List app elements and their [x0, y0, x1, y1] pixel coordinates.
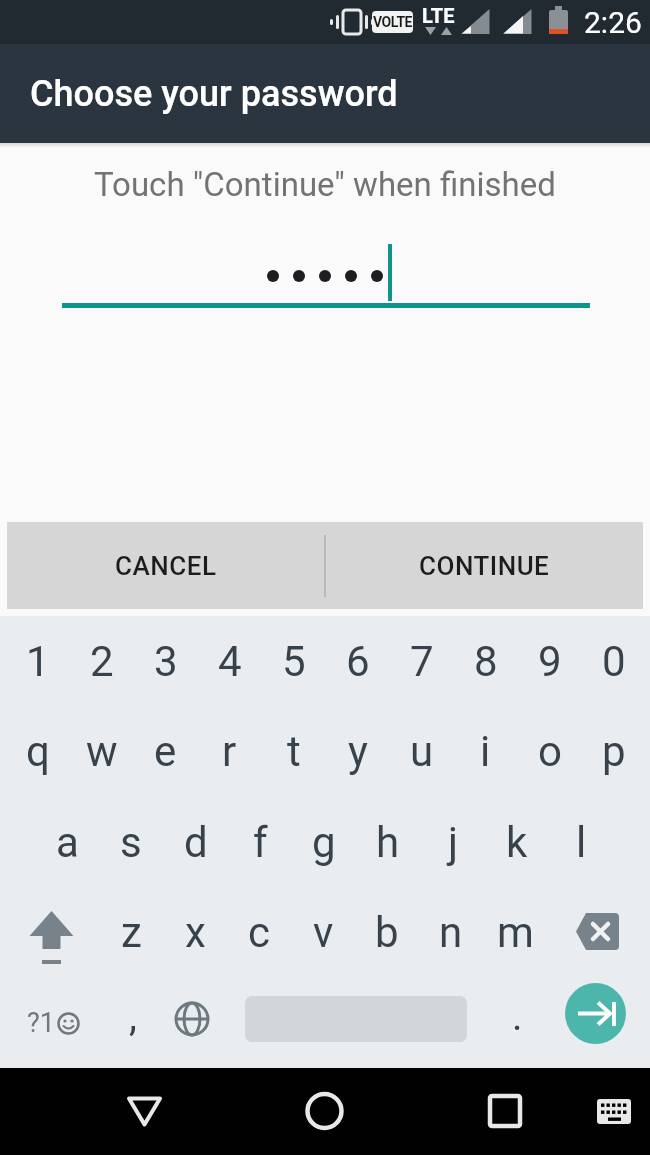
staticText: f	[253, 818, 268, 867]
button[interactable]	[294, 1080, 355, 1141]
button[interactable]: k	[485, 797, 549, 887]
staticText: x	[185, 908, 206, 957]
button[interactable]: w	[69, 706, 134, 797]
button[interactable]: 3	[133, 616, 198, 706]
staticText: n	[439, 908, 463, 957]
staticText: k	[506, 818, 528, 867]
button[interactable]	[114, 1080, 175, 1141]
button[interactable]: s	[99, 797, 163, 887]
button[interactable]: 6	[325, 616, 390, 706]
button[interactable]: n	[419, 887, 483, 978]
button[interactable]: l	[549, 797, 613, 887]
staticText: r	[222, 727, 237, 776]
staticText: 2:26	[584, 5, 642, 40]
button[interactable]: j	[421, 797, 485, 887]
staticText: d	[184, 818, 208, 867]
staticText: 9	[538, 637, 562, 686]
button[interactable]: p	[581, 706, 646, 797]
button[interactable]: z	[99, 887, 163, 978]
button[interactable]	[565, 983, 626, 1044]
button[interactable]: ?1	[10, 978, 96, 1068]
staticText: CONTINUE	[419, 551, 550, 581]
staticText: q	[26, 727, 50, 776]
button[interactable]: CANCEL	[7, 522, 325, 609]
button[interactable]: 8	[453, 616, 518, 706]
button[interactable]: u	[389, 706, 454, 797]
staticText: s	[120, 818, 142, 867]
staticText: y	[348, 727, 368, 776]
staticText: a	[56, 818, 79, 867]
button[interactable]: m	[483, 887, 547, 978]
staticText: t	[287, 727, 301, 776]
staticText: 1	[26, 637, 50, 686]
button[interactable]	[584, 1080, 645, 1141]
staticText: 0	[602, 637, 626, 686]
staticText: p	[602, 727, 626, 776]
button[interactable]: e	[133, 706, 198, 797]
staticText: m	[497, 908, 534, 957]
button[interactable]: g	[292, 797, 356, 887]
button[interactable]: v	[291, 887, 355, 978]
staticText: VOLTE	[373, 14, 412, 30]
staticText: g	[312, 818, 336, 867]
staticText: 4	[218, 637, 242, 686]
button[interactable]: q	[5, 706, 70, 797]
button[interactable]: 7	[389, 616, 454, 706]
staticText: o	[538, 727, 562, 776]
button[interactable]	[557, 891, 637, 971]
button[interactable]: 4	[197, 616, 262, 706]
button[interactable]: t	[261, 706, 326, 797]
staticText: CANCEL	[115, 551, 217, 581]
button[interactable]: ,	[103, 971, 163, 1061]
button[interactable]	[474, 1080, 535, 1141]
button[interactable]: 2	[69, 616, 134, 706]
button[interactable]: 5	[261, 616, 326, 706]
button[interactable]: b	[355, 887, 419, 978]
staticText: ?1	[27, 1007, 55, 1039]
staticText: Touch "Continue" when finished	[94, 165, 556, 204]
button[interactable]: a	[35, 797, 99, 887]
button[interactable]: c	[227, 887, 291, 978]
staticText: Choose your password	[30, 73, 398, 115]
staticText: z	[121, 908, 142, 957]
button[interactable]: i	[453, 706, 518, 797]
staticText: 7	[410, 637, 434, 686]
staticText: 5	[282, 637, 306, 686]
staticText: i	[480, 727, 491, 776]
button[interactable]: x	[163, 887, 227, 978]
staticText: c	[248, 908, 270, 957]
staticText: v	[313, 908, 334, 957]
button[interactable]: 9	[517, 616, 582, 706]
button[interactable]: 0	[581, 616, 646, 706]
button[interactable]: o	[517, 706, 582, 797]
button[interactable]	[11, 891, 91, 971]
button[interactable]: h	[356, 797, 420, 887]
staticText: j	[448, 818, 459, 867]
staticText: 8	[474, 637, 498, 686]
staticText: b	[375, 908, 399, 957]
staticText: 2	[90, 637, 114, 686]
button[interactable]: y	[325, 706, 390, 797]
staticText: ,	[129, 993, 137, 1040]
staticText: 3	[154, 637, 178, 686]
staticText: .	[512, 993, 523, 1040]
staticText: l	[576, 818, 587, 867]
button[interactable]	[172, 999, 212, 1039]
button[interactable]: .	[487, 971, 547, 1061]
button[interactable]: d	[164, 797, 228, 887]
button[interactable]: f	[228, 797, 292, 887]
staticText: 6	[346, 637, 370, 686]
staticText: LTE	[422, 4, 455, 27]
staticText: w	[86, 727, 118, 776]
staticText: u	[410, 727, 434, 776]
staticText: h	[376, 818, 400, 867]
button[interactable]: r	[197, 706, 262, 797]
button[interactable]: 1	[5, 616, 70, 706]
staticText: e	[154, 727, 177, 776]
button[interactable]: CONTINUE	[325, 522, 643, 609]
